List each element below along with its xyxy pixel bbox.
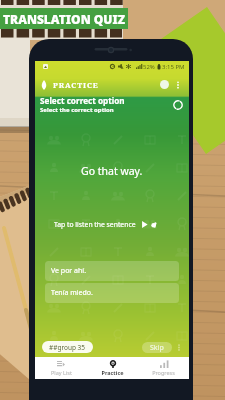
staticText: PRACTICE [53, 80, 99, 90]
staticText: Practice [101, 369, 124, 376]
button[interactable]: Ve por ahí. [45, 261, 179, 281]
button[interactable]: Practice [87, 357, 138, 379]
staticText: ##group 35 [49, 343, 86, 352]
staticText: Skip [150, 343, 164, 353]
staticText: Ve por ahí. [51, 266, 87, 276]
staticText: Go that way. [81, 164, 143, 178]
button[interactable]: More options [174, 79, 182, 91]
button[interactable]: More [175, 342, 183, 353]
staticText: 3:15 PM [162, 63, 185, 71]
staticText: TRANSLATION QUIZ [3, 11, 126, 27]
staticText: Tenía miedo. [51, 288, 93, 298]
button[interactable]: Refresh [173, 100, 183, 110]
button[interactable]: Play List [35, 357, 87, 379]
button[interactable]: Tap to listen the sentence [54, 220, 158, 229]
button[interactable]: ##group 35 [42, 341, 93, 353]
staticText: Select the correct option [40, 106, 114, 114]
staticText: 52% [143, 63, 155, 71]
staticText: Play List [51, 369, 72, 376]
button[interactable]: Progress [138, 357, 189, 379]
staticText: Progress [152, 369, 175, 376]
button[interactable]: Tenía miedo. [45, 283, 179, 303]
button[interactable]: Skip [142, 342, 172, 353]
staticText: Tap to listen the sentence [54, 220, 136, 229]
button[interactable]: Sound [160, 80, 169, 89]
staticText: Select correct option [40, 95, 125, 106]
